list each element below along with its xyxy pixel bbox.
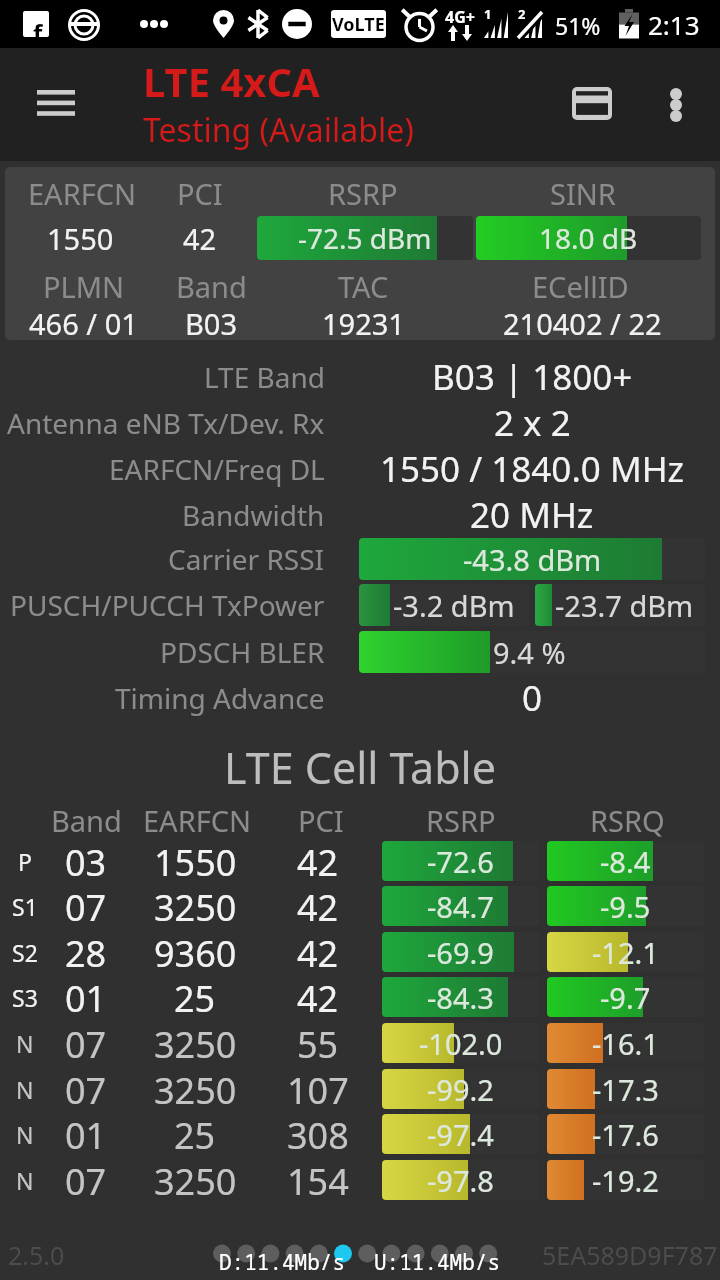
staticText: 308: [287, 1111, 349, 1157]
staticText: 2: [518, 5, 526, 23]
staticText: PCI: [298, 801, 344, 840]
staticText: 3250: [154, 1066, 237, 1112]
staticText: 20 MHz: [470, 491, 594, 539]
staticText: 01: [65, 1111, 107, 1157]
staticText: 07: [65, 1020, 107, 1066]
staticText: N: [16, 1119, 34, 1150]
staticText: Carrier RSSI: [168, 540, 325, 578]
staticText: -97.4: [427, 1115, 494, 1154]
button[interactable]: Navigation menu: [8, 48, 104, 161]
staticText: -16.1: [592, 1024, 659, 1063]
staticText: 9.4 %: [493, 633, 566, 672]
staticText: N: [16, 1165, 34, 1196]
staticText: -3.2 dBm: [393, 586, 515, 625]
staticText: RSRQ: [590, 801, 665, 840]
staticText: 18.0 dB: [539, 219, 638, 257]
staticText: 03: [65, 838, 107, 884]
button[interactable]: N: [0, 1020, 720, 1066]
staticText: Antenna eNB Tx/Dev. Rx: [7, 404, 325, 442]
button[interactable]: N: [0, 1157, 720, 1203]
staticText: VoLTE: [332, 12, 385, 37]
staticText: B03: [185, 304, 238, 340]
staticText: -19.2: [592, 1161, 659, 1200]
staticText: 2 x 2: [494, 399, 571, 447]
staticText: U:11.4Mb/s: [374, 1248, 500, 1277]
staticText: -72.6: [427, 842, 494, 881]
staticText: 07: [65, 883, 107, 929]
staticText: Bandwidth: [182, 496, 325, 534]
staticText: -69.9: [427, 933, 494, 972]
staticText: B03 | 1800+: [432, 353, 633, 401]
staticText: 210402 / 22: [503, 304, 662, 340]
button[interactable]: Layout view: [544, 48, 640, 161]
staticText: 1: [484, 5, 492, 23]
staticText: -12.1: [592, 933, 659, 972]
staticText: N: [16, 1074, 34, 1105]
staticText: EARFCN/Freq DL: [109, 450, 325, 488]
staticText: 3250: [154, 1157, 237, 1203]
staticText: RSRP: [426, 801, 496, 840]
staticText: 01: [65, 974, 107, 1020]
button[interactable]: P: [0, 838, 720, 884]
staticText: ECellID: [532, 267, 629, 306]
staticText: 3250: [154, 883, 237, 929]
button[interactable]: More options: [640, 48, 720, 161]
staticText: SINR: [550, 174, 616, 213]
staticText: S1: [12, 891, 38, 922]
staticText: 3250: [154, 1020, 237, 1066]
staticText: 107: [287, 1066, 349, 1112]
button[interactable]: N: [0, 1066, 720, 1112]
staticText: 28: [65, 929, 107, 975]
staticText: 55: [297, 1020, 339, 1066]
staticText: PDSCH BLER: [160, 633, 325, 671]
staticText: LTE Cell Table: [0, 738, 720, 797]
staticText: S2: [12, 937, 38, 968]
button[interactable]: S1: [0, 883, 720, 929]
staticText: 9360: [154, 929, 237, 975]
staticText: S3: [12, 982, 38, 1013]
staticText: Band: [176, 267, 247, 306]
staticText: PLMN: [43, 267, 125, 306]
staticText: PCI: [177, 174, 223, 213]
button[interactable]: S2: [0, 929, 720, 975]
staticText: 19231: [322, 304, 405, 340]
staticText: TAC: [338, 267, 389, 306]
staticText: 42: [297, 838, 339, 884]
staticText: 25: [174, 974, 216, 1020]
staticText: 1550 / 1840.0 MHz: [380, 445, 685, 493]
staticText: 466 / 01: [29, 304, 138, 340]
staticText: -17.6: [592, 1115, 659, 1154]
staticText: 0: [522, 674, 543, 722]
staticText: -17.3: [592, 1070, 659, 1109]
staticText: -97.8: [427, 1161, 494, 1200]
staticText: 07: [65, 1066, 107, 1112]
staticText: P: [18, 846, 32, 877]
staticText: -84.3: [427, 978, 494, 1017]
staticText: -84.7: [427, 887, 494, 926]
staticText: 2.5.0: [8, 1238, 65, 1272]
staticText: 1550: [154, 838, 237, 884]
staticText: 154: [287, 1157, 349, 1203]
staticText: 5EA589D9F787: [542, 1238, 718, 1272]
button[interactable]: N: [0, 1111, 720, 1157]
staticText: -99.2: [427, 1070, 494, 1109]
staticText: 42: [183, 219, 217, 258]
staticText: EARFCN: [143, 801, 252, 840]
staticText: 2:13: [648, 7, 700, 42]
staticText: 51%: [555, 10, 601, 41]
staticText: -43.8 dBm: [463, 540, 602, 579]
staticText: 42: [297, 974, 339, 1020]
staticText: 4G+: [445, 6, 475, 28]
button[interactable]: S3: [0, 974, 720, 1020]
staticText: -72.5 dBm: [298, 219, 432, 257]
staticText: RSRP: [328, 174, 398, 213]
staticText: N: [16, 1028, 34, 1059]
staticText: LTE Band: [204, 358, 325, 396]
staticText: LTE 4xCA: [143, 54, 320, 108]
staticText: 1550: [47, 219, 114, 258]
staticText: -9.7: [600, 978, 651, 1017]
staticText: -9.5: [600, 887, 651, 926]
staticText: -102.0: [419, 1024, 503, 1063]
staticText: Timing Advance: [115, 679, 325, 717]
staticText: EARFCN: [28, 174, 137, 213]
